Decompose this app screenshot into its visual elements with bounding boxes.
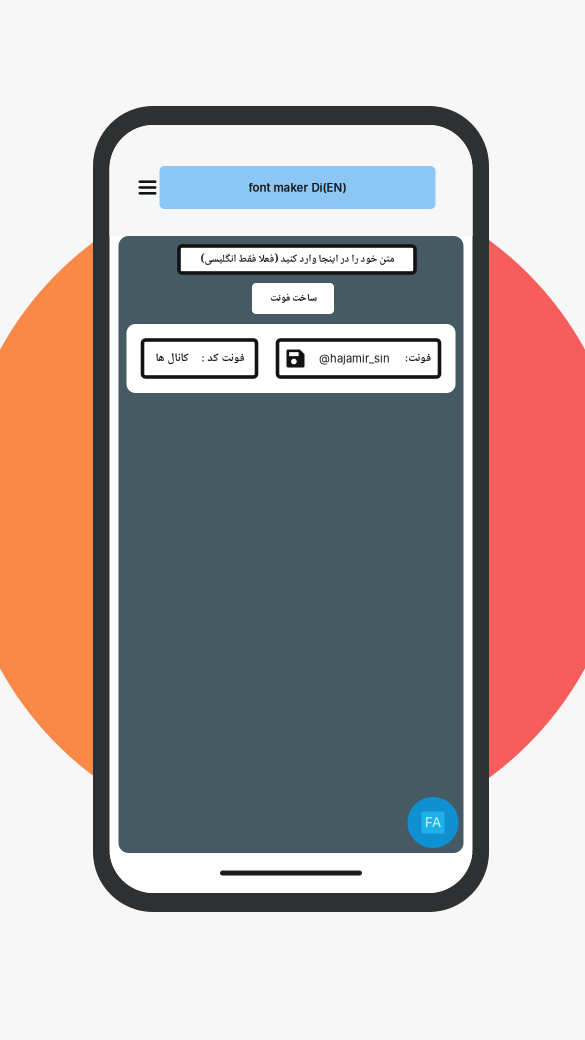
staticText: کانال ها bbox=[155, 349, 188, 368]
staticText: فونت: bbox=[404, 349, 430, 368]
button[interactable]: Open menu bbox=[123, 166, 159, 209]
staticText: FA bbox=[425, 814, 441, 830]
button[interactable]: کانال ها bbox=[142, 340, 256, 377]
button[interactable]: @hajamir_sin bbox=[277, 340, 439, 377]
staticText: متن خود را در اینجا وارد کنید (فعلا فقط … bbox=[200, 250, 394, 269]
staticText: ساخت فونت bbox=[269, 290, 316, 307]
button[interactable]: font maker Di(EN) bbox=[159, 166, 435, 209]
staticText: فونت کد : bbox=[201, 349, 244, 368]
staticText: @hajamir_sin bbox=[319, 352, 390, 365]
button[interactable]: ساخت فونت bbox=[252, 283, 334, 314]
staticText: font maker Di(EN) bbox=[248, 181, 346, 194]
button[interactable]: Switch to Persian bbox=[407, 797, 458, 848]
